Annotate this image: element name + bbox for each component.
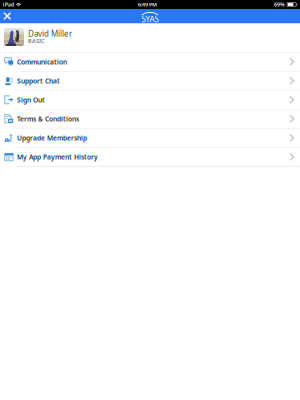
staticText: 6:49 PM: [138, 1, 157, 8]
staticText: David Miller: [28, 28, 72, 39]
staticText: SYAS: [141, 14, 158, 24]
button[interactable]: David Miller: [0, 23, 300, 52]
button[interactable]: My App Payment History: [0, 148, 300, 166]
button[interactable]: Sign Out: [0, 91, 300, 109]
button[interactable]: Terms & Conditions: [0, 110, 300, 128]
staticText: BASIC: [28, 37, 44, 45]
staticText: 69%: [274, 1, 285, 8]
staticText: Communication: [17, 57, 67, 66]
button[interactable]: Close: [0, 9, 15, 24]
button[interactable]: Support Chat: [0, 72, 300, 90]
staticText: Sign Out: [17, 95, 45, 104]
staticText: Terms & Conditions: [17, 114, 79, 123]
staticText: Upgrade Membership: [17, 133, 87, 142]
staticText: Support Chat: [17, 76, 60, 85]
staticText: My App Payment History: [17, 152, 98, 161]
button[interactable]: Upgrade Membership: [0, 129, 300, 147]
staticText: iPad: [3, 1, 14, 8]
button[interactable]: Communication: [0, 53, 300, 71]
